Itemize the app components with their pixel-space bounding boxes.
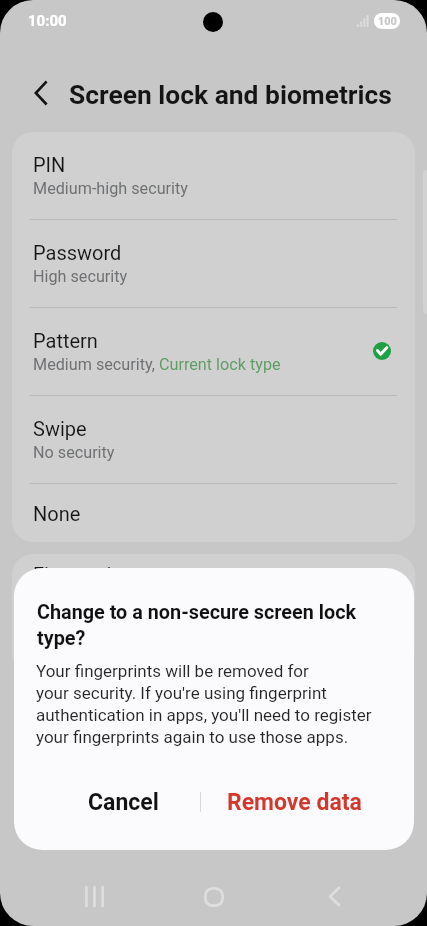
staticText: Remove data [227, 789, 362, 816]
staticText: Screen lock and biometrics [69, 80, 392, 111]
staticText: None [33, 502, 81, 525]
staticText: Fingerprints [33, 563, 140, 586]
staticText: Medium security, Current lock type [33, 355, 281, 374]
staticText: Cancel [88, 789, 159, 816]
staticText: PIN [33, 153, 66, 176]
button[interactable]: Pattern [12, 308, 415, 395]
button[interactable]: Home [154, 871, 274, 922]
button[interactable]: Cancel [42, 776, 204, 828]
button[interactable]: Swipe [12, 396, 415, 483]
staticText: Password [33, 241, 122, 264]
staticText: Swipe [33, 417, 87, 440]
staticText: 100 [378, 15, 397, 28]
staticText: Medium-high security [33, 179, 188, 198]
button[interactable]: Navigate up [17, 69, 65, 117]
button[interactable]: Recent apps [34, 871, 154, 922]
button[interactable]: Remove data [205, 776, 384, 828]
staticText: Your fingerprints will be removed for yo… [36, 661, 372, 747]
button[interactable]: PIN [12, 132, 415, 219]
button[interactable]: None [12, 484, 415, 542]
staticText: No security [33, 443, 115, 462]
staticText: High security [33, 267, 128, 286]
staticText: type? [37, 627, 86, 650]
button[interactable]: Password [12, 220, 415, 307]
staticText: Pattern [33, 329, 98, 352]
staticText: Change to a non-secure screen lock [37, 601, 357, 624]
staticText: 10:00 [28, 12, 67, 30]
